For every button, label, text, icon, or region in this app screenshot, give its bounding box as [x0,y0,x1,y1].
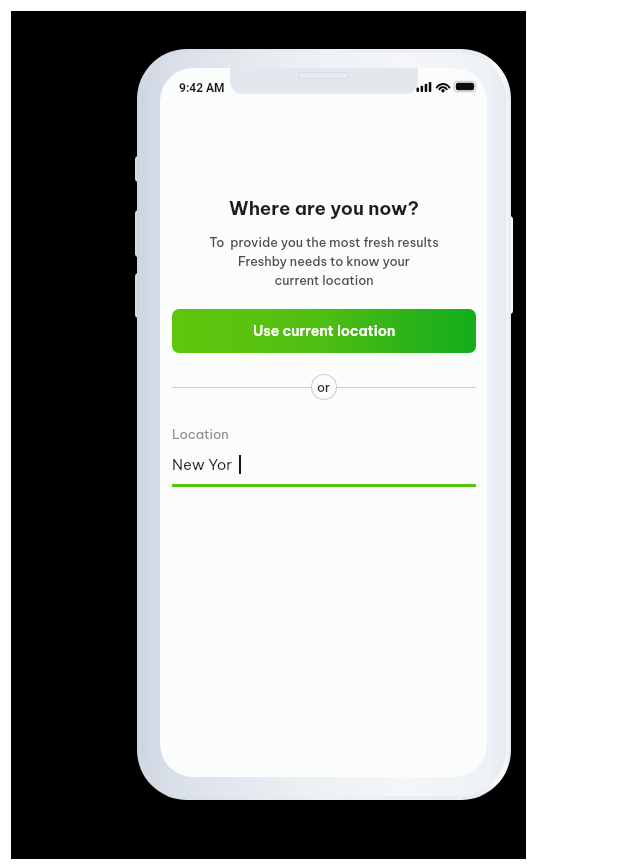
staticText: New Yor [172,455,233,474]
staticText: 9:42 AM [179,81,225,95]
staticText: Where are you now? [229,196,419,220]
staticText: To provide you the most fresh results Fr… [209,234,439,288]
button[interactable]: Use current location [172,309,476,353]
other: Status [416,80,476,92]
staticText: or [317,379,331,395]
staticText: Use current location [253,322,396,340]
staticText: Location [172,426,229,442]
